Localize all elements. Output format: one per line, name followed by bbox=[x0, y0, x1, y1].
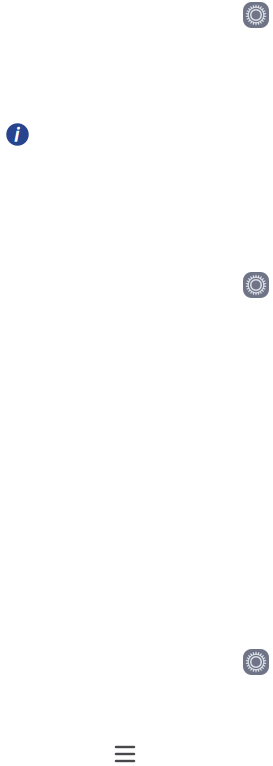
button[interactable]: Information bbox=[0, 117, 34, 151]
staticText: i bbox=[14, 122, 20, 147]
button[interactable]: Settings bbox=[239, 2, 273, 32]
button[interactable]: Settings bbox=[239, 268, 273, 302]
button[interactable]: Settings bbox=[239, 645, 273, 679]
button[interactable]: Menu bbox=[103, 732, 147, 766]
